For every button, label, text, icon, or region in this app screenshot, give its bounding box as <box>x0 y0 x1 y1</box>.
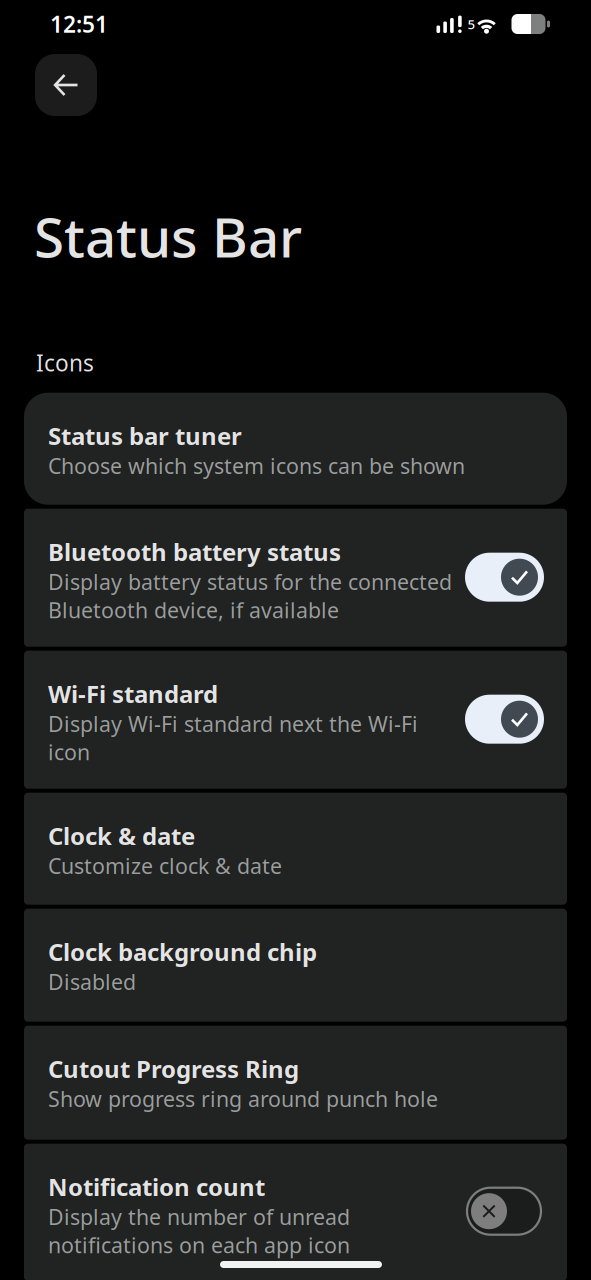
button[interactable]: Clock & date <box>24 793 567 905</box>
staticText: Icons <box>36 348 94 378</box>
staticText: Status bar tuner <box>48 420 242 452</box>
staticText: Bluetooth battery status <box>48 536 341 568</box>
button[interactable]: Wi-Fi standard <box>24 651 567 789</box>
staticText: Wi-Fi standard <box>48 678 218 710</box>
staticText: Notification count <box>48 1171 265 1203</box>
staticText: Customize clock & date <box>48 852 282 880</box>
button[interactable]: Back <box>35 54 97 116</box>
button[interactable]: Bluetooth battery status <box>24 509 567 647</box>
button[interactable]: Clock background chip <box>24 909 567 1022</box>
staticText: 5 <box>467 15 475 33</box>
staticText: Display battery status for the connected… <box>48 568 452 624</box>
staticText: Clock background chip <box>48 936 317 968</box>
staticText: Disabled <box>48 968 136 996</box>
button[interactable]: Cutout Progress Ring <box>24 1026 567 1140</box>
staticText: Show progress ring around punch hole <box>48 1085 438 1113</box>
staticText: Display Wi-Fi standard next the Wi-Fi ic… <box>48 710 418 766</box>
staticText: Choose which system icons can be shown <box>48 452 465 480</box>
staticText: Status Bar <box>34 200 302 273</box>
staticText: Cutout Progress Ring <box>48 1053 299 1085</box>
staticText: Clock & date <box>48 820 195 852</box>
button[interactable]: Notification count <box>24 1144 567 1280</box>
staticText: Display the number of unread notificatio… <box>48 1203 350 1259</box>
button[interactable]: Status bar tuner <box>24 393 567 505</box>
staticText: 12:51 <box>50 9 108 39</box>
